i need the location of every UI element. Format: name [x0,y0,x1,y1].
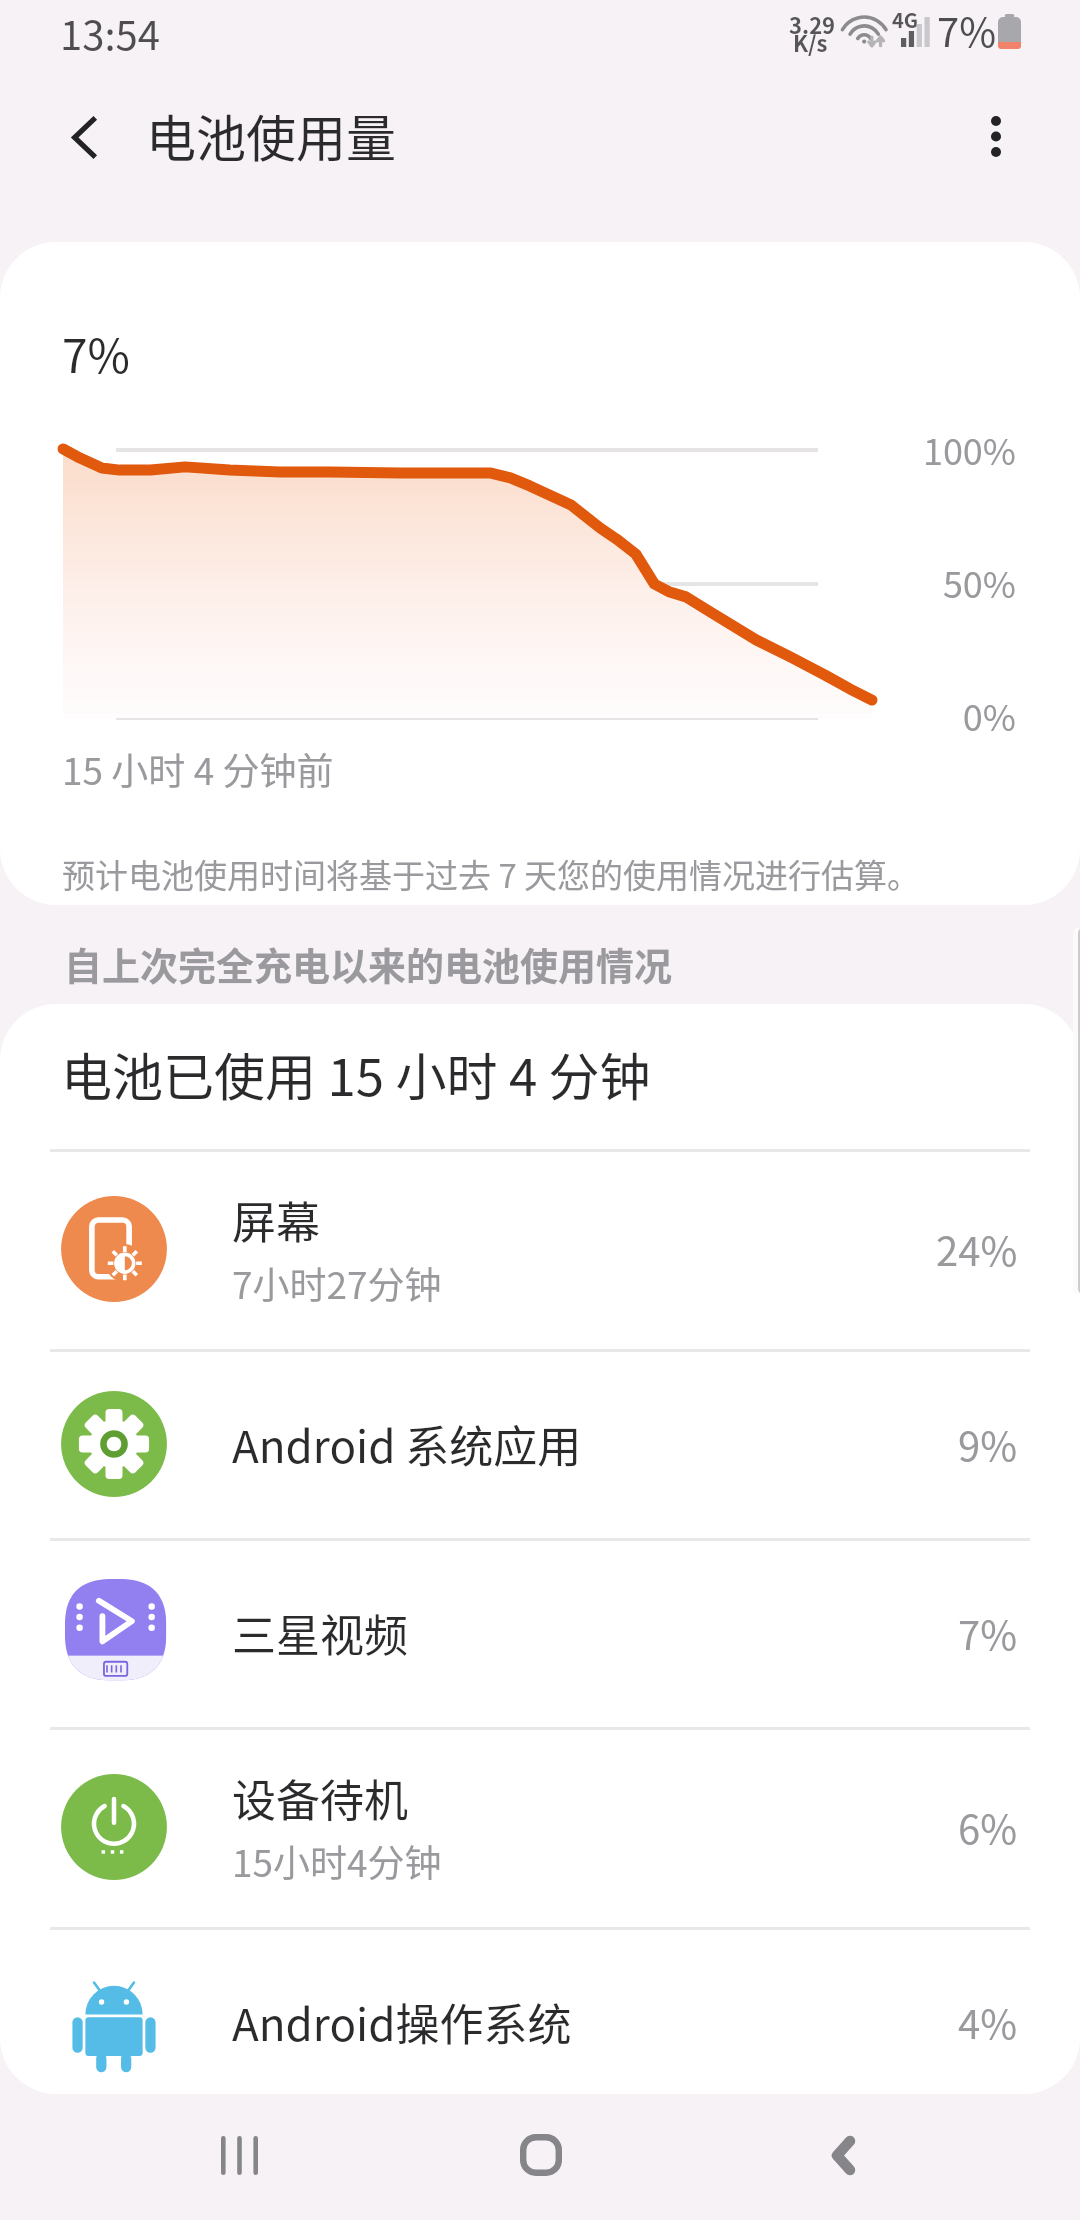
staticText: Android 系统应用 [232,1412,582,1476]
staticText: 设备待机 [232,1766,408,1830]
staticText: 三星视频 [232,1601,408,1665]
button[interactable]: Android 系统应用 [0,1349,1080,1538]
staticText: 7% [958,1604,1018,1662]
staticText: 15小时4分钟 [232,1834,442,1888]
staticText: 0% [830,689,1016,741]
button[interactable]: 设备待机 [0,1727,1080,1927]
staticText: 100% [830,423,1016,475]
staticText: 6% [958,1798,1018,1856]
button[interactable]: Android操作系统 [0,1927,1080,2094]
staticText: 自上次完全充电以来的电池使用情况 [64,936,673,991]
staticText: 15 小时 4 分钟前 [62,742,334,796]
button[interactable]: More options [946,93,1046,193]
staticText: 电池使用量 [146,99,396,171]
staticText: 3.29 [789,8,836,40]
staticText: 50% [830,556,1016,608]
button[interactable]: Back [753,2094,933,2220]
button[interactable]: Back [36,95,132,191]
staticText: 24% [936,1220,1018,1278]
button[interactable]: 三星视频 [0,1538,1080,1727]
button[interactable]: 屏幕 [0,1149,1080,1349]
staticText: 4% [958,1993,1018,2051]
staticText: 9% [958,1415,1018,1473]
button[interactable]: Home [451,2094,631,2220]
staticText: 7% [937,1,997,59]
button[interactable]: Recent apps [149,2094,329,2220]
staticText: 7小时27分钟 [232,1256,442,1310]
staticText: 屏幕 [232,1188,320,1252]
staticText: Android操作系统 [232,1990,572,2054]
staticText: 4G [892,5,919,34]
staticText: 13:54 [60,4,160,62]
staticText: 电池已使用 15 小时 4 分钟 [61,1037,651,1111]
staticText: 7% [62,320,130,387]
staticText: K/s [793,26,828,58]
staticText: 预计电池使用时间将基于过去 7 天您的使用情况进行估算。 [62,850,921,898]
